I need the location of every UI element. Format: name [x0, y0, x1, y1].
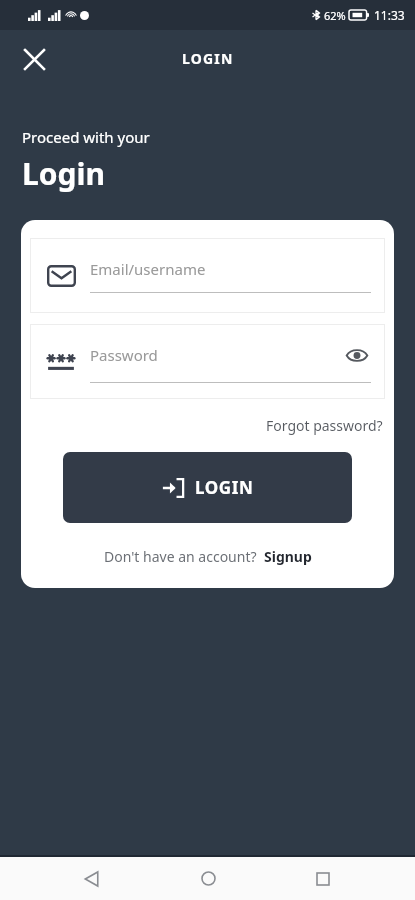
staticText: Don't have an account? — [104, 547, 257, 566]
staticText: 62% — [324, 8, 346, 23]
staticText: 11:33 — [374, 7, 405, 23]
button[interactable]: Home — [184, 857, 232, 900]
button[interactable]: Close — [14, 39, 54, 79]
button[interactable]: Email/username — [30, 238, 385, 313]
staticText: Forgot password? — [266, 416, 383, 435]
button[interactable]: Show password — [343, 341, 371, 369]
button[interactable]: Don't have an account? — [21, 547, 394, 566]
staticText: Email/username — [90, 259, 371, 279]
staticText: Signup — [264, 547, 312, 566]
button[interactable]: Recent apps — [299, 857, 347, 900]
staticText: Login — [22, 153, 105, 194]
staticText: LOGIN — [195, 476, 254, 499]
staticText: LOGIN — [182, 49, 234, 68]
button[interactable]: Forgot password? — [264, 413, 385, 438]
button[interactable]: LOGIN — [63, 452, 352, 523]
staticText: Password — [90, 345, 343, 365]
button[interactable]: Back — [68, 857, 116, 900]
button[interactable]: Password — [30, 324, 385, 399]
staticText: Proceed with your — [22, 127, 150, 147]
